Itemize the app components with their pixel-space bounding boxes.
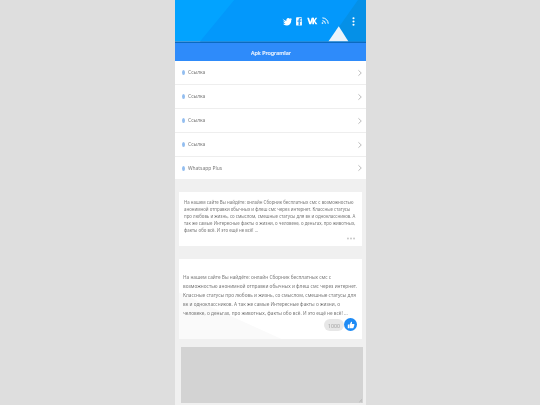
button[interactable]: RSS xyxy=(320,15,330,25)
button[interactable]: VK xyxy=(307,16,317,26)
button[interactable]: Whatsapp Plus xyxy=(175,157,366,179)
staticText: Ссылка xyxy=(188,117,206,124)
staticText: Ссылка xyxy=(188,93,206,100)
button[interactable]: Ссылка xyxy=(175,133,366,156)
staticText: 1000 xyxy=(328,322,340,329)
button[interactable]: Like xyxy=(344,318,357,331)
button[interactable]: Ссылка xyxy=(175,61,366,84)
button[interactable]: More options xyxy=(349,14,358,29)
button[interactable]: Ссылка xyxy=(175,109,366,132)
button[interactable]: На нашем сайте Вы найдёте: онлайн Сборни… xyxy=(179,192,362,246)
staticText: Apk Programlar xyxy=(251,49,291,56)
staticText: На нашем сайте Вы найдёте: онлайн Сборни… xyxy=(183,274,359,316)
button[interactable]: Facebook xyxy=(294,16,304,26)
button[interactable]: На нашем сайте Вы найдёте: онлайн Сборни… xyxy=(179,259,362,339)
button[interactable]: Twitter xyxy=(282,17,292,27)
button[interactable]: Apk Programlar xyxy=(175,43,366,61)
staticText: Ссылка xyxy=(188,141,206,148)
button[interactable]: Ссылка xyxy=(175,85,366,108)
staticText: На нашем сайте Вы найдёте: онлайн Сборни… xyxy=(184,199,356,233)
staticText: Ссылка xyxy=(188,69,206,76)
staticText: Whatsapp Plus xyxy=(188,165,223,172)
